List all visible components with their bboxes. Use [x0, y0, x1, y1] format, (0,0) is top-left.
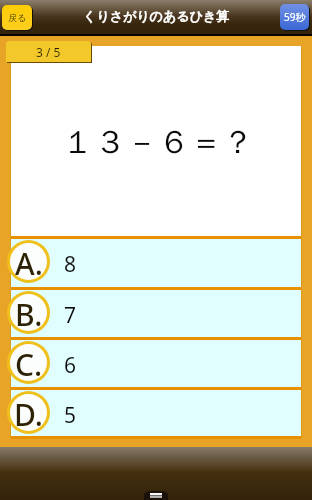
staticText: B.	[15, 294, 43, 335]
staticText: 5	[64, 401, 77, 430]
staticText: くりさがりのあるひき算	[83, 8, 230, 24]
button[interactable]: B.	[0, 287, 312, 338]
button[interactable]: 3 / 5	[6, 41, 91, 62]
button[interactable]: A.	[0, 236, 312, 287]
button[interactable]: D.	[0, 387, 312, 438]
button[interactable]: C.	[0, 337, 312, 388]
button[interactable]: 戻る	[2, 5, 32, 30]
staticText: 59秒	[284, 10, 306, 24]
staticText: 3 / 5	[36, 44, 61, 60]
staticText: 7	[64, 301, 77, 330]
button[interactable]: Home	[144, 491, 168, 500]
staticText: D.	[14, 394, 43, 435]
staticText: A.	[15, 243, 43, 284]
staticText: 6	[64, 351, 77, 380]
staticText: C.	[15, 344, 43, 385]
staticText: 戻る	[8, 12, 27, 23]
staticText: 8	[64, 250, 77, 279]
staticText: １３－６＝？	[62, 122, 254, 162]
button[interactable]: 59秒	[280, 4, 309, 30]
